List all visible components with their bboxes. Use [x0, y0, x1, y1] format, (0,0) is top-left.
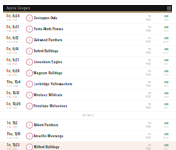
staticText: 27-6 — [164, 126, 168, 128]
staticText: Recap — [145, 73, 150, 76]
staticText: 7:30 PM — [6, 52, 16, 54]
staticText: Penelope Wolverines — [34, 104, 68, 108]
staticText: Recap — [145, 18, 150, 21]
staticText: Won — [164, 59, 168, 62]
button[interactable]: Fri, 9/14 — [0, 46, 176, 57]
button[interactable]: Fri, 8/24 — [0, 13, 176, 24]
staticText: 7:00 PM — [6, 137, 17, 139]
staticText: Won — [164, 37, 168, 40]
button[interactable]: Fri, 9/12 — [0, 35, 176, 46]
button[interactable]: Fri, 8/31 — [0, 24, 176, 35]
button[interactable]: Fri, 10/26 — [0, 101, 176, 112]
staticText: Won — [164, 133, 168, 136]
staticText: Final — [147, 133, 150, 135]
staticText: Lockridge Yellowjackets — [34, 82, 73, 86]
staticText: 41-0 — [164, 30, 168, 32]
staticText: Aquila Cougars — [6, 7, 29, 10]
staticText: Final — [147, 81, 150, 83]
staticText: 35-7 — [164, 63, 168, 65]
staticText: Final — [147, 70, 150, 72]
staticText: Final — [147, 15, 150, 17]
staticText: Final — [147, 48, 150, 50]
staticText: Won — [164, 81, 168, 84]
button[interactable]: Fri, 11/23 — [0, 142, 176, 150]
staticText: Fri, 8/24 — [6, 15, 19, 18]
staticText: Jonesboro Eagles — [34, 60, 63, 64]
staticText: Final — [147, 92, 150, 94]
staticText: 42-3 — [164, 85, 168, 87]
staticText: 7:00 PM — [6, 41, 17, 43]
staticText: Final — [147, 144, 150, 146]
staticText: 7:30 PM — [6, 74, 16, 76]
staticText: 28-14 — [163, 41, 168, 43]
staticText: 7:30 PM — [6, 107, 16, 109]
staticText: Won — [164, 144, 168, 147]
staticText: Magnum Bulldogs — [34, 71, 63, 75]
staticText: 24-7 — [164, 107, 168, 109]
staticText: 30-9 — [164, 96, 168, 98]
staticText: Fri, 9/12 — [6, 37, 18, 40]
button[interactable]: Thu, 11/15 — [0, 131, 176, 142]
staticText: 21-13 — [163, 52, 168, 54]
staticText: Fri, 10/12 — [6, 92, 19, 95]
staticText: 7:30 PM — [6, 63, 16, 65]
staticText: Thu, 10/4 — [6, 81, 20, 84]
staticText: Recap — [145, 136, 150, 139]
staticText: 14-7 — [164, 148, 168, 150]
staticText: Won — [164, 48, 168, 51]
staticText: Final — [147, 122, 150, 124]
staticText: Won — [164, 15, 168, 18]
staticText: Recap — [145, 62, 150, 65]
staticText: Won — [164, 122, 168, 125]
staticText: Final — [147, 26, 150, 28]
staticText: Won — [164, 26, 168, 29]
staticText: Milford Bulldogs — [34, 145, 60, 149]
staticText: Recap — [145, 95, 150, 98]
staticText: Covington Owls — [34, 16, 58, 20]
staticText: 31-14 — [163, 137, 168, 139]
button[interactable]: Fri, 9/28 — [0, 68, 176, 79]
staticText: Won — [164, 103, 168, 106]
staticText: Fri, 11/2 — [6, 122, 17, 125]
staticText: Final — [147, 37, 150, 39]
staticText: 7:30 PM — [6, 19, 16, 21]
staticText: Recap — [145, 51, 150, 54]
staticText: Recap — [145, 29, 150, 32]
staticText: Won — [164, 92, 168, 95]
button[interactable]: Thu, 10/4 — [0, 79, 176, 90]
staticText: Recap — [145, 147, 150, 150]
staticText: Recap — [145, 106, 150, 109]
staticText: Oakwood Panthers — [34, 38, 63, 42]
staticText: 17-10 — [163, 74, 168, 76]
staticText: Final — [147, 59, 150, 61]
staticText: Fri, 11/23 — [6, 144, 19, 147]
staticText: Abbott Panthers — [34, 123, 59, 127]
staticText: Fri, 9/14 — [6, 48, 18, 51]
staticText: Fri, 8/31 — [6, 26, 18, 29]
staticText: Woolsey Wildcats — [34, 93, 63, 97]
staticText: 7:30 PM — [6, 126, 16, 128]
staticText: Perris-Ninth Pirates — [34, 27, 64, 31]
button[interactable]: Fri, 11/2 — [0, 120, 176, 131]
staticText: Fri, 10/26 — [6, 103, 20, 106]
staticText: 7:30 PM — [6, 148, 16, 150]
staticText: Recap — [145, 40, 150, 43]
staticText: 7:00 PM — [6, 85, 17, 87]
staticText: Buford Bulldogs — [34, 49, 59, 53]
staticText: Recap — [145, 84, 150, 87]
button[interactable]: Fri, 9/21 — [0, 57, 176, 68]
staticText: Fri, 9/21 — [6, 59, 18, 62]
staticText: Fri, 9/28 — [6, 70, 19, 73]
staticText: Thu, 11/15 — [6, 133, 20, 136]
staticText: 7:30 PM — [6, 96, 16, 98]
staticText: GHSA Playoffs — [82, 114, 94, 117]
staticText: Amarillo Mustangs — [34, 134, 64, 138]
button[interactable]: Fri, 10/12 — [0, 90, 176, 101]
staticText: Won — [164, 70, 168, 73]
staticText: Final — [147, 103, 150, 105]
staticText: 34-6 — [164, 19, 168, 21]
staticText: 7:30 PM — [6, 30, 16, 32]
staticText: Recap — [145, 125, 150, 128]
